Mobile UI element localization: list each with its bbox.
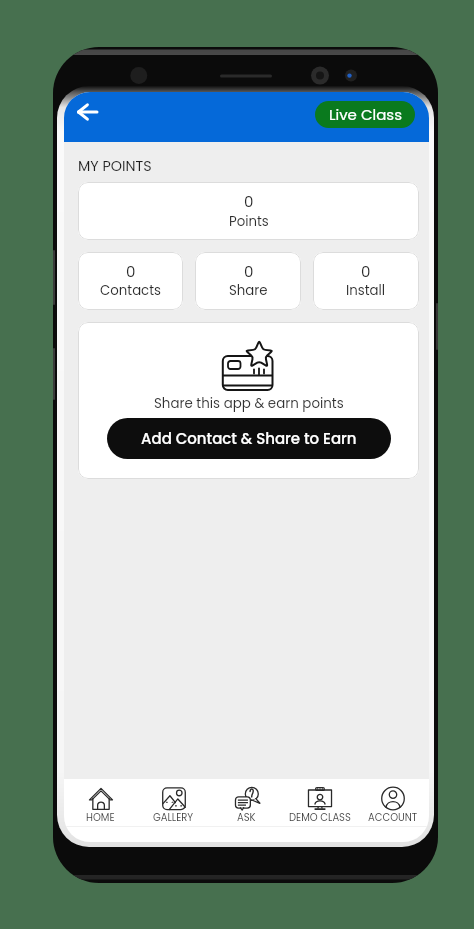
- button[interactable]: GALLERY: [137, 779, 210, 842]
- staticText: MY POINTS: [78, 156, 152, 176]
- button[interactable]: DEMO CLASS: [283, 779, 356, 842]
- staticText: ACCOUNT: [368, 810, 418, 824]
- button[interactable]: 0: [313, 252, 419, 310]
- staticText: Share this app & earn points: [154, 394, 344, 413]
- button[interactable]: HOME: [64, 779, 137, 842]
- button[interactable]: 0: [195, 252, 301, 310]
- staticText: 0: [361, 261, 371, 282]
- staticText: Share: [229, 281, 268, 300]
- button[interactable]: Back: [68, 93, 106, 131]
- staticText: Contacts: [100, 281, 161, 300]
- staticText: 0: [244, 261, 254, 282]
- staticText: ASK: [237, 810, 256, 824]
- staticText: Add Contact & Share to Earn: [141, 428, 357, 449]
- button[interactable]: ACCOUNT: [356, 779, 429, 842]
- staticText: HOME: [86, 810, 115, 824]
- staticText: Points: [229, 212, 269, 231]
- staticText: GALLERY: [153, 810, 194, 824]
- staticText: DEMO CLASS: [289, 810, 351, 824]
- button[interactable]: Live Class: [315, 101, 415, 128]
- staticText: Live Class: [329, 104, 402, 125]
- staticText: Install: [346, 281, 386, 300]
- staticText: 0: [126, 261, 136, 282]
- button[interactable]: 0: [78, 182, 419, 240]
- button[interactable]: Add Contact & Share to Earn: [107, 418, 391, 459]
- button[interactable]: ASK: [210, 779, 283, 842]
- button[interactable]: 0: [78, 252, 183, 310]
- staticText: 0: [244, 191, 254, 212]
